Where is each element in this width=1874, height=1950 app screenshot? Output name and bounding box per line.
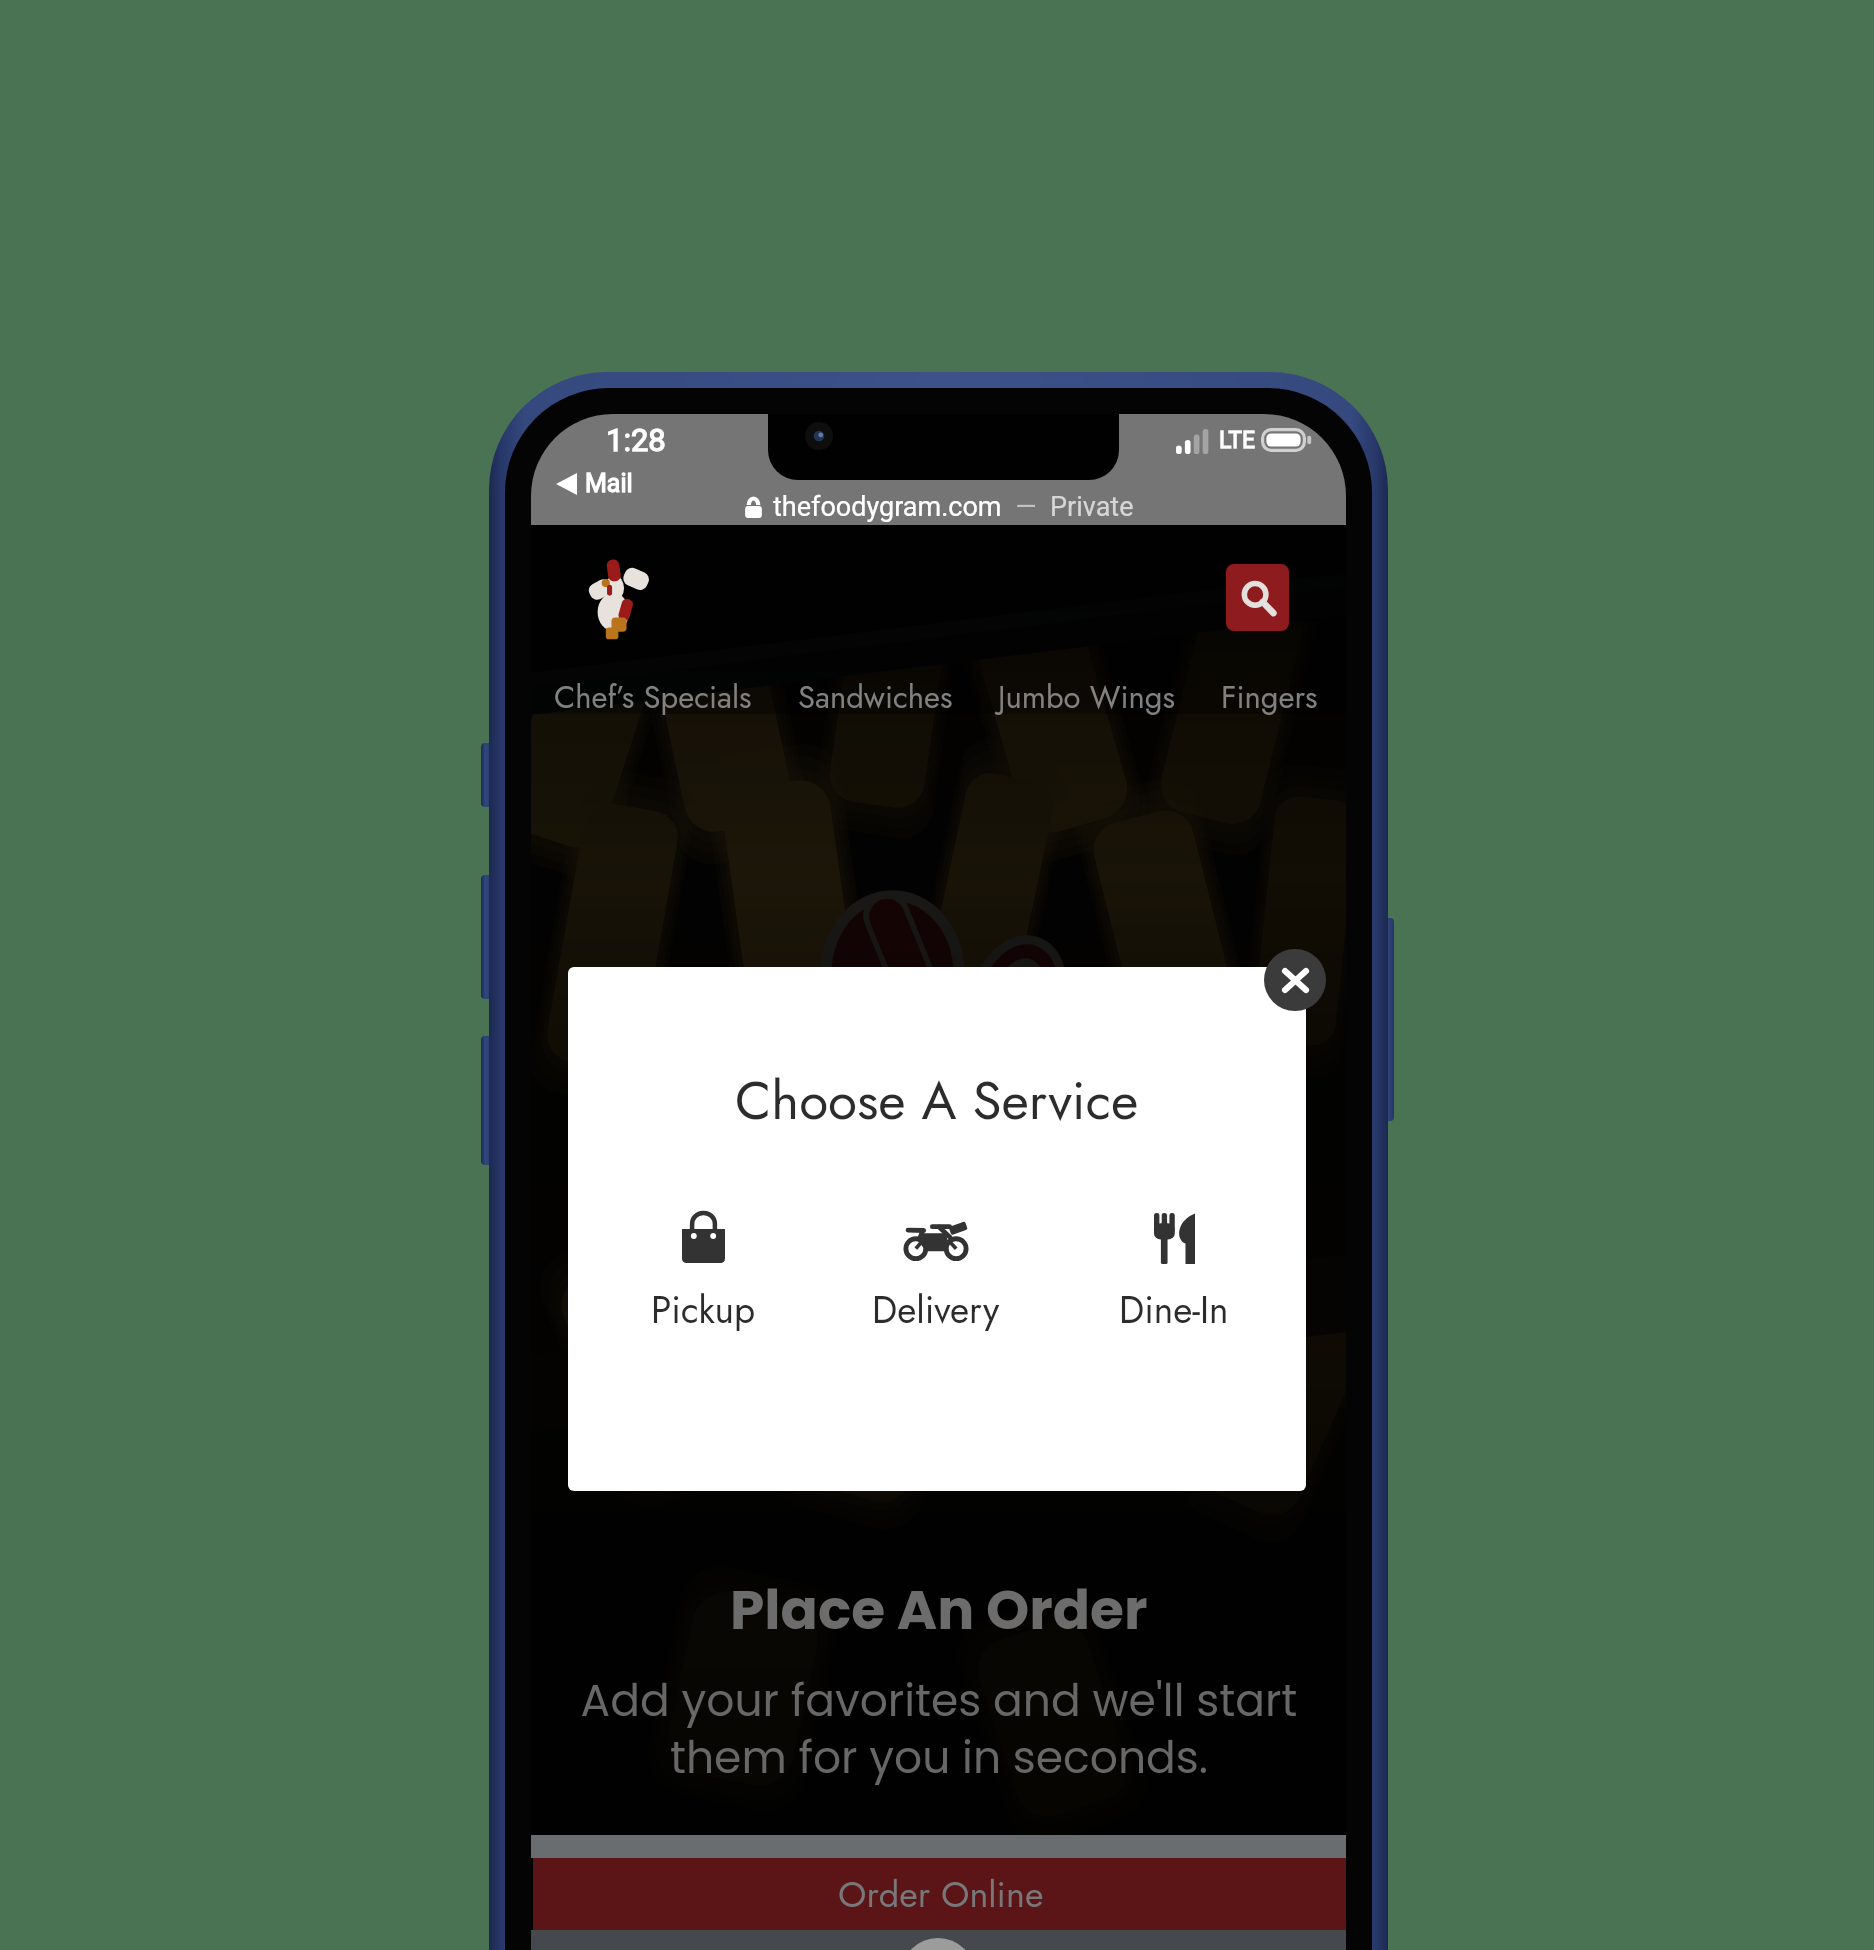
staticText: Order Online	[838, 1868, 1044, 1920]
staticText: LTE	[1219, 427, 1256, 454]
staticText: Place An Order	[730, 1571, 1148, 1648]
button[interactable]: Jumbo Wings	[976, 666, 1197, 729]
staticText: Dine-In	[1119, 1283, 1229, 1336]
staticText: Pickup	[651, 1283, 756, 1336]
button[interactable]: Search	[1226, 564, 1289, 631]
staticText: Private	[1050, 491, 1134, 523]
staticText: Delivery	[872, 1283, 1000, 1336]
staticText: Mail	[585, 469, 633, 498]
staticText: —	[1002, 491, 1050, 523]
button[interactable]: Fingers	[1197, 666, 1342, 729]
button[interactable]: Chef’s Specials	[531, 666, 775, 729]
button[interactable]: Sandwiches	[775, 666, 976, 729]
staticText: Chef’s Specials	[554, 675, 752, 720]
button[interactable]: Delivery	[846, 1220, 1026, 1336]
button[interactable]: Dine-In	[1084, 1213, 1264, 1336]
button[interactable]: Home	[585, 557, 648, 641]
staticText: thefoodygram.com	[773, 491, 1002, 523]
button[interactable]: Close dialog	[1264, 949, 1326, 1011]
staticText: 1:28	[606, 422, 666, 458]
staticText: Add your favorites and we'll start them …	[574, 1670, 1304, 1788]
staticText: Sandwiches	[798, 675, 953, 720]
button[interactable]: Mail	[556, 469, 633, 498]
staticText: Choose A Service	[735, 1062, 1139, 1139]
staticText: Fingers	[1221, 675, 1318, 720]
button[interactable]: Pickup	[613, 1213, 793, 1336]
staticText: Jumbo Wings	[998, 675, 1175, 720]
button[interactable]: Order Online	[533, 1858, 1346, 1930]
